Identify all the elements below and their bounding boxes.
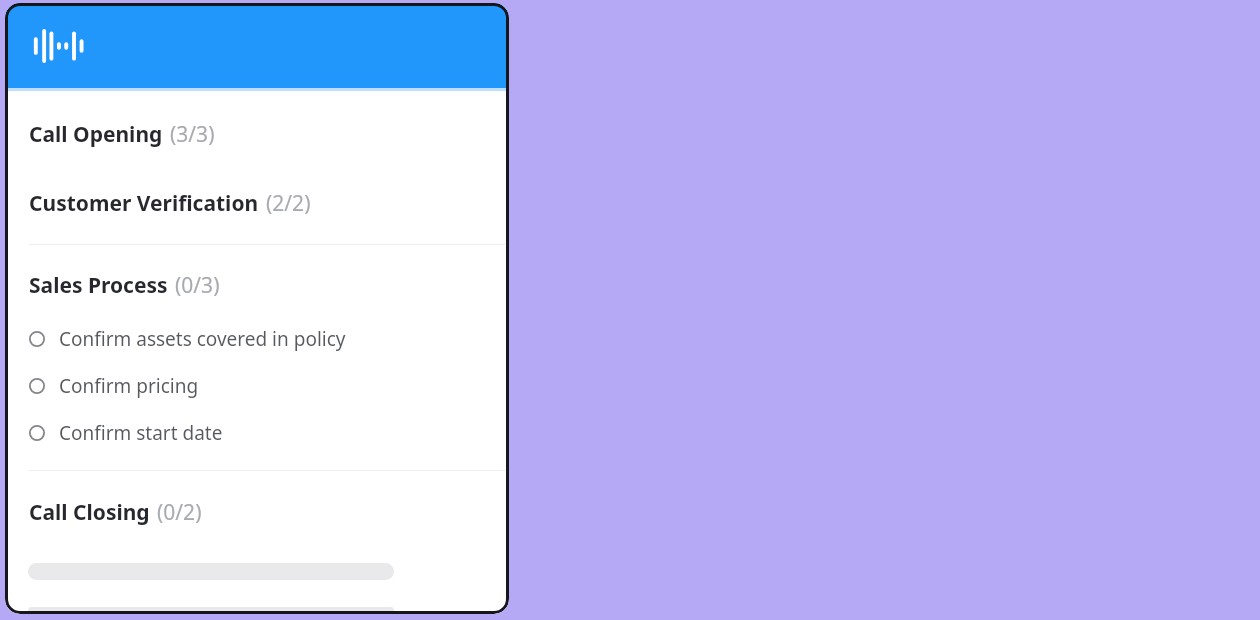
staticText: Call Closing (29, 498, 150, 527)
staticText: (0/3) (175, 271, 220, 300)
other: App logo (31, 29, 83, 63)
staticText: Confirm start date (59, 420, 223, 446)
button[interactable]: Confirm assets covered in policy (5, 315, 509, 362)
staticText: (0/2) (157, 498, 202, 527)
staticText: Sales Process (29, 271, 168, 300)
staticText: (3/3) (170, 120, 215, 149)
staticText: Confirm assets covered in policy (59, 326, 346, 352)
staticText: Customer Verification (29, 189, 259, 218)
button[interactable]: Call Opening (5, 120, 509, 149)
staticText: Call Opening (29, 120, 163, 149)
button[interactable]: Call Closing (5, 498, 509, 527)
staticText: Confirm pricing (59, 373, 199, 399)
button[interactable]: Customer Verification (5, 189, 509, 218)
button[interactable]: Sales Process (5, 271, 509, 300)
staticText: (2/2) (266, 189, 311, 218)
button[interactable]: App logo (5, 3, 509, 88)
button[interactable]: Confirm pricing (5, 362, 509, 409)
button[interactable]: Confirm start date (5, 409, 509, 456)
